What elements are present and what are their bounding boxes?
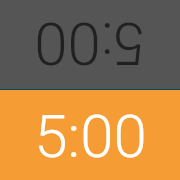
staticText: 5:00 xyxy=(34,9,147,79)
staticText: 5:00 xyxy=(34,101,147,171)
button[interactable]: Opponent clock, 5 minutes 0 seconds xyxy=(0,0,180,89)
button[interactable]: Your clock, 5 minutes 0 seconds xyxy=(0,90,180,180)
